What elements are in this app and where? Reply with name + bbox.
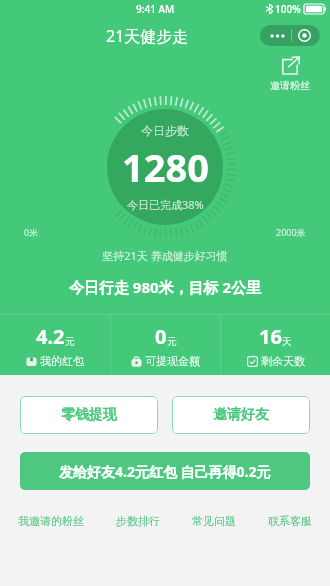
staticText: 元 [65, 335, 75, 348]
staticText: 21天健步走 [106, 25, 189, 47]
staticText: 联系客服 [268, 514, 312, 528]
staticText: 常见问题 [192, 514, 236, 528]
button[interactable]: 联系客服 [268, 512, 312, 530]
staticText: 可提现金额 [145, 354, 200, 368]
button[interactable]: 邀请好友 [172, 396, 310, 434]
button[interactable]: 16 [221, 315, 330, 375]
staticText: 我的红包 [40, 354, 84, 368]
staticText: 0 [155, 323, 167, 350]
staticText: 100% [275, 2, 301, 16]
staticText: 我邀请的粉丝 [18, 514, 84, 528]
staticText: 坚持21天 养成健步好习惯 [0, 248, 330, 263]
staticText: 4.2 [36, 323, 65, 350]
staticText: 发给好友4.2元红包 自己再得0.2元 [59, 462, 271, 481]
staticText: 邀请好友 [213, 406, 269, 424]
staticText: 今日行走 980米，目标 2公里 [0, 277, 330, 297]
staticText: 元 [167, 335, 177, 348]
button[interactable]: 零钱提现 [20, 396, 158, 434]
button[interactable]: 发给好友4.2元红包 自己再得0.2元 [20, 452, 310, 490]
staticText: 零钱提现 [61, 406, 117, 424]
staticText: 2000米 [276, 226, 306, 238]
button[interactable]: 常见问题 [192, 512, 236, 530]
button[interactable]: 邀请粉丝 [266, 54, 314, 94]
button[interactable]: Menu and close [269, 29, 311, 42]
staticText: 今日已完成38% [127, 197, 204, 212]
staticText: 1280 [122, 141, 209, 193]
staticText: 16 [259, 323, 282, 350]
staticText: 9:41 AM [136, 2, 175, 16]
staticText: 天 [282, 335, 292, 348]
staticText: 0米 [24, 226, 39, 238]
button[interactable]: 0 [111, 315, 220, 375]
staticText: 邀请粉丝 [270, 79, 310, 92]
button[interactable]: 步数排行 [116, 512, 160, 530]
button[interactable]: 4.2 [0, 315, 110, 375]
button[interactable]: 我邀请的粉丝 [18, 512, 84, 530]
staticText: 步数排行 [116, 514, 160, 528]
staticText: 今日步数 [141, 123, 189, 138]
staticText: 剩余天数 [261, 354, 305, 368]
